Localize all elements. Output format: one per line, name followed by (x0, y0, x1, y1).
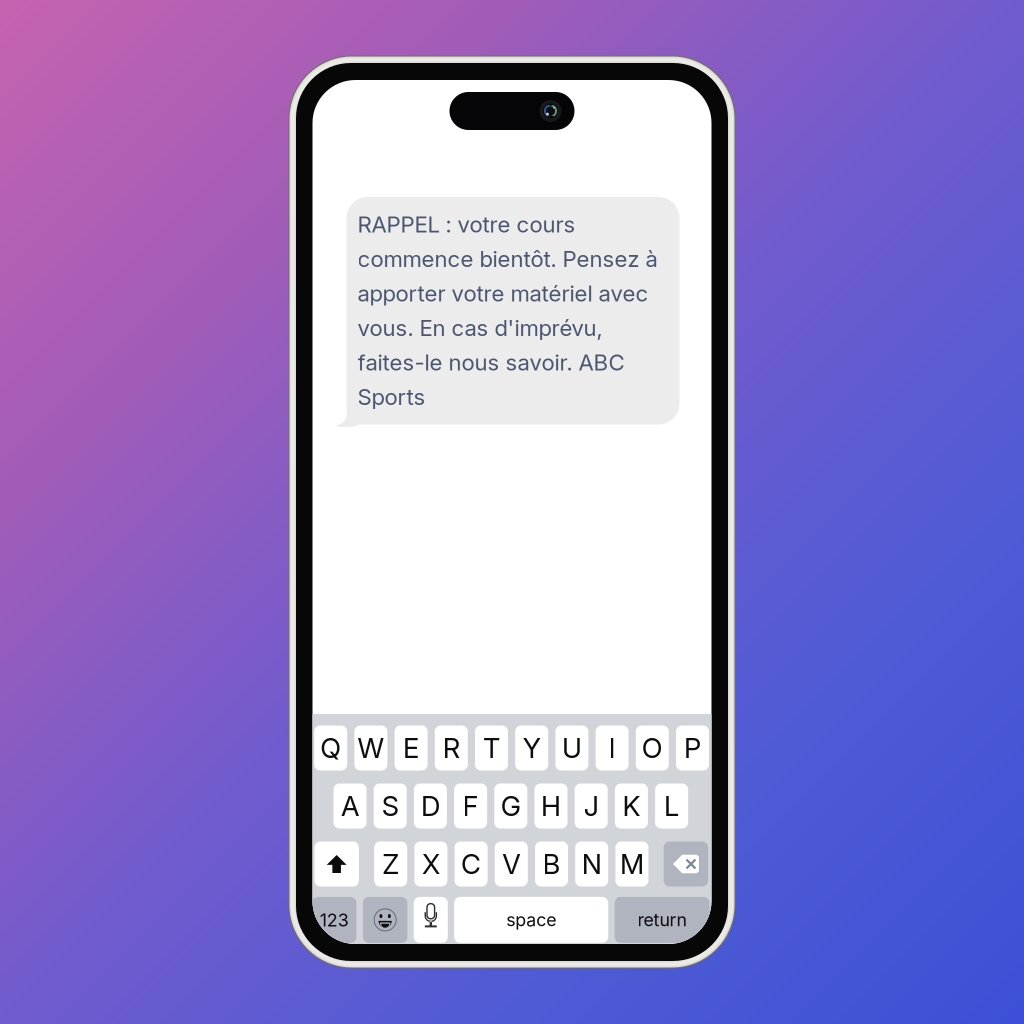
staticText: V (502, 847, 520, 881)
staticText: X (422, 847, 440, 881)
staticText: vous. En cas d'imprévu, (357, 314, 602, 341)
staticText: U (562, 731, 582, 765)
button[interactable]: S (374, 783, 407, 828)
button[interactable]: F (454, 783, 487, 828)
button[interactable]: U (555, 725, 588, 770)
button[interactable]: I (596, 725, 629, 770)
staticText: Z (382, 847, 399, 881)
staticText: P (684, 731, 701, 765)
staticText: A (341, 789, 359, 823)
staticText: apporter votre matériel avec (357, 280, 648, 307)
button[interactable]: Q (314, 725, 347, 770)
button[interactable]: E (395, 725, 428, 770)
staticText: I (609, 731, 616, 765)
staticText: W (357, 731, 384, 765)
button[interactable]: M (615, 841, 648, 886)
button[interactable]: J (575, 783, 608, 828)
button[interactable]: K (615, 783, 648, 828)
staticText: O (642, 731, 663, 765)
staticText: L (664, 789, 679, 823)
button[interactable]: 123 (312, 897, 356, 943)
staticText: return (638, 909, 687, 931)
staticText: N (582, 847, 602, 881)
button[interactable]: Dictate (414, 897, 448, 943)
staticText: F (463, 789, 479, 823)
staticText: E (403, 731, 419, 765)
button[interactable]: L (655, 783, 688, 828)
button[interactable]: A (333, 783, 366, 828)
button[interactable]: Z (374, 841, 407, 886)
button[interactable]: C (455, 841, 488, 886)
staticText: J (584, 789, 599, 823)
staticText: D (421, 789, 440, 823)
button[interactable]: space (454, 897, 608, 943)
staticText: C (461, 847, 481, 881)
button[interactable]: Y (515, 725, 548, 770)
button[interactable]: O (636, 725, 669, 770)
button[interactable]: D (414, 783, 447, 828)
button[interactable]: H (534, 783, 567, 828)
button[interactable]: return (615, 897, 710, 943)
staticText: 123 (320, 909, 349, 931)
staticText: commence bientôt. Pensez à (357, 245, 657, 272)
button[interactable]: Emoji (363, 897, 407, 943)
button[interactable]: W (354, 725, 387, 770)
staticText: Y (523, 731, 541, 765)
button[interactable]: B (535, 841, 568, 886)
staticText: K (622, 789, 640, 823)
button[interactable]: V (495, 841, 528, 886)
staticText: G (501, 789, 521, 823)
staticText: Sports (357, 383, 425, 410)
staticText: T (483, 731, 500, 765)
staticText: RAPPEL : votre cours (357, 211, 575, 238)
staticText: Q (320, 731, 341, 765)
staticText: M (620, 847, 644, 881)
button[interactable]: Shift (314, 841, 359, 886)
staticText: S (382, 789, 399, 823)
staticText: H (541, 789, 561, 823)
button[interactable]: P (676, 725, 709, 770)
staticText: R (443, 731, 460, 765)
button[interactable]: R (435, 725, 468, 770)
staticText: faites-le nous savoir. ABC (357, 349, 624, 376)
staticText: space (506, 909, 556, 931)
button[interactable]: N (575, 841, 608, 886)
button[interactable]: T (475, 725, 508, 770)
staticText: B (542, 847, 560, 881)
button[interactable]: Delete (664, 841, 708, 886)
button[interactable]: X (414, 841, 447, 886)
button[interactable]: G (494, 783, 527, 828)
